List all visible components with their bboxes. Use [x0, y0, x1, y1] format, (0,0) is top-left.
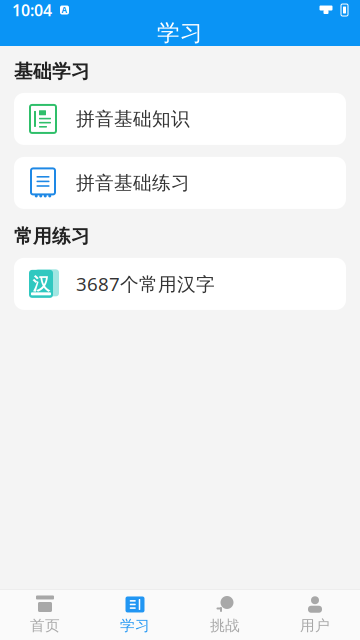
- staticText: 基础学习: [14, 60, 90, 83]
- staticText: 用户: [300, 616, 330, 634]
- button[interactable]: 拼音基础知识: [0, 93, 360, 145]
- button[interactable]: 用户: [270, 590, 360, 640]
- staticText: 拼音基础知识: [76, 107, 190, 130]
- staticText: 学习: [120, 616, 150, 634]
- staticText: 常用练习: [14, 225, 90, 248]
- staticText: 挑战: [210, 616, 240, 634]
- button[interactable]: 拼音基础练习: [0, 157, 360, 209]
- button[interactable]: 汉: [0, 258, 360, 310]
- staticText: 3687个常用汉字: [76, 271, 215, 296]
- button[interactable]: 学习: [90, 590, 180, 640]
- staticText: A: [61, 5, 67, 15]
- staticText: 拼音基础练习: [76, 171, 190, 194]
- staticText: 10:04: [12, 0, 52, 21]
- staticText: 首页: [30, 616, 60, 634]
- button[interactable]: 挑战: [180, 590, 270, 640]
- staticText: 汉: [32, 273, 49, 294]
- staticText: 学习: [157, 19, 203, 47]
- button[interactable]: 首页: [0, 590, 90, 640]
